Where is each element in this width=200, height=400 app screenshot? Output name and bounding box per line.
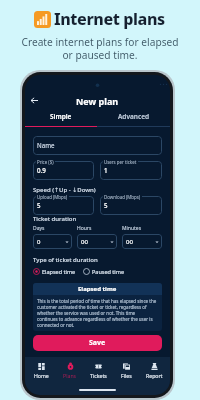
button[interactable] (100, 196, 162, 215)
button[interactable]: Save (33, 335, 162, 351)
button[interactable] (100, 161, 162, 180)
staticText: 00 (81, 238, 88, 246)
button[interactable]: Elapsed time (33, 268, 76, 275)
staticText: Download (Mbps) (104, 194, 141, 200)
button[interactable]: 0 (33, 234, 72, 249)
staticText: Report (146, 372, 163, 379)
button[interactable]: Plans (56, 363, 84, 379)
staticText: Elapsed time (42, 268, 76, 275)
staticText: Hours (77, 225, 92, 232)
button[interactable]: Home (27, 363, 56, 379)
staticText: Users per ticket (104, 159, 137, 165)
button[interactable]: Back (28, 94, 41, 107)
staticText: Home (34, 372, 49, 379)
button[interactable] (33, 136, 162, 155)
staticText: Price ($) (37, 159, 54, 165)
staticText: Tickets (90, 372, 107, 379)
button[interactable]: Paused time (83, 268, 125, 275)
staticText: Ticket duration (33, 215, 77, 223)
staticText: Simple (50, 112, 72, 121)
button[interactable]: Advanced (97, 109, 170, 127)
staticText: Speed (↑Up - ↓Down) (33, 186, 96, 194)
staticText: Create internet plans for elapsed or pau… (0, 35, 200, 62)
button[interactable]: 00 (122, 234, 162, 249)
staticText: 0.9 (37, 166, 46, 174)
staticText: Type of ticket duration (33, 256, 98, 264)
button[interactable]: Simple (25, 109, 97, 127)
button[interactable] (33, 196, 94, 215)
staticText: Elapsed time (78, 285, 117, 293)
staticText: 5 (104, 201, 108, 209)
staticText: Upload (Mbps) (37, 194, 68, 200)
staticText: Plans (63, 372, 77, 379)
staticText: Minutes (122, 225, 142, 232)
staticText: 1 (104, 166, 108, 174)
button[interactable] (33, 161, 94, 180)
staticText: Files (121, 372, 132, 379)
staticText: Paused time (92, 268, 125, 275)
staticText: This is the total period of time that ha… (37, 298, 157, 328)
staticText: Days (33, 225, 45, 232)
staticText: 5 (37, 201, 41, 209)
button[interactable]: Files (112, 363, 140, 379)
staticText: 0 (37, 238, 41, 246)
staticText: Name (37, 141, 55, 149)
button[interactable]: Tickets (84, 363, 112, 379)
staticText: Advanced (118, 112, 150, 121)
staticText: 00 (126, 238, 133, 246)
staticText: Save (89, 338, 106, 348)
button[interactable]: Report (140, 363, 168, 379)
staticText: New plan (76, 95, 119, 107)
button[interactable]: 00 (77, 234, 117, 249)
staticText: Internet plans (54, 8, 165, 30)
